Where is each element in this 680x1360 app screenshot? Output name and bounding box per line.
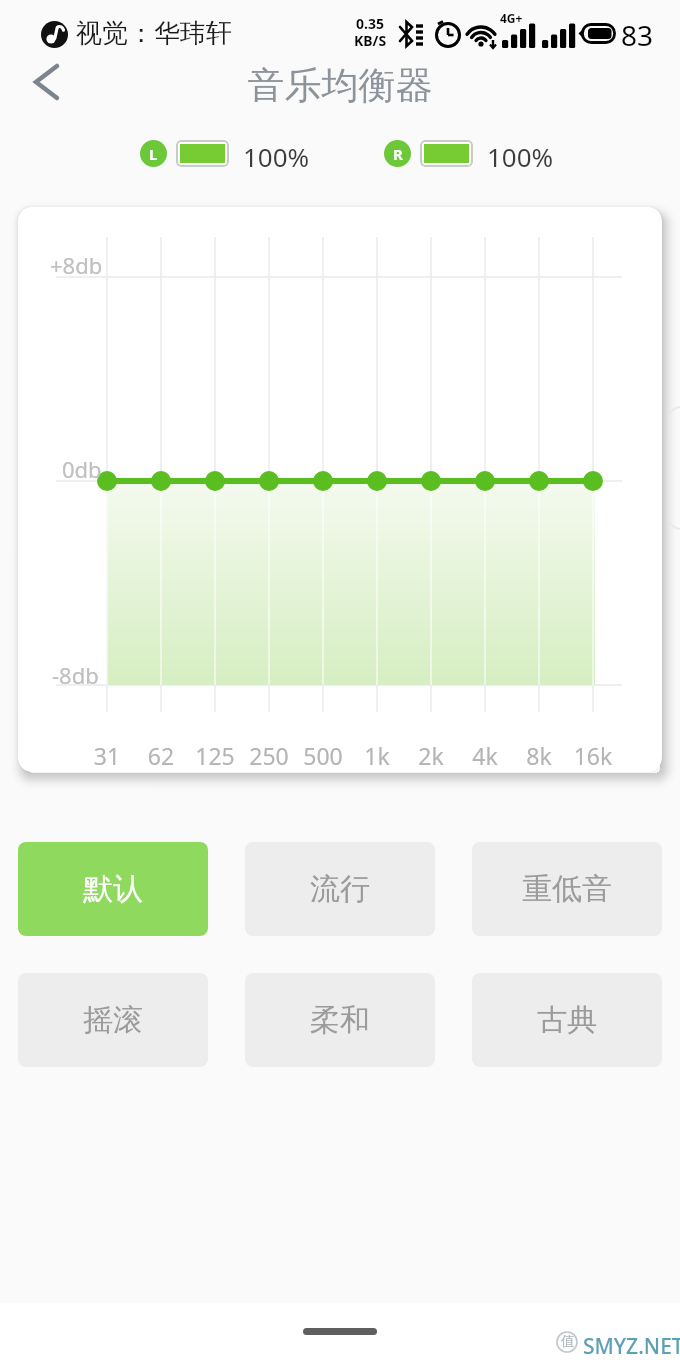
staticText: KB/S (354, 31, 387, 50)
staticText: 0db (62, 454, 102, 484)
staticText: R (393, 144, 403, 164)
staticText: 柔和 (310, 1001, 370, 1039)
staticText: 100% (487, 139, 554, 174)
button[interactable]: 重低音 (472, 842, 662, 936)
staticText: 音乐均衡器 (0, 62, 680, 109)
button[interactable]: 古典 (472, 973, 662, 1067)
staticText: 4k (458, 740, 512, 770)
staticText: L (149, 144, 158, 164)
staticText: 8k (512, 740, 566, 770)
button[interactable]: 默认 (18, 842, 208, 936)
staticText: 4G+ (500, 10, 523, 26)
staticText: 值 (561, 1333, 575, 1351)
staticText: 125 (188, 740, 242, 770)
staticText: 视觉：华玮轩 (76, 17, 232, 50)
staticText: 流行 (310, 870, 370, 908)
staticText: 1k (350, 740, 404, 770)
staticText: -8db (52, 660, 99, 690)
staticText: SMYZ.NET (583, 1332, 680, 1360)
button[interactable]: 柔和 (245, 973, 435, 1067)
staticText: 500 (296, 740, 350, 770)
staticText: +8db (50, 250, 103, 280)
staticText: 0.35 (356, 14, 384, 33)
staticText: 16k (566, 740, 620, 770)
staticText: 古典 (537, 1001, 597, 1039)
staticText: 62 (134, 740, 188, 770)
button[interactable]: 摇滚 (18, 973, 208, 1067)
staticText: 2k (404, 740, 458, 770)
button[interactable]: 流行 (245, 842, 435, 936)
button[interactable] (303, 1328, 377, 1335)
staticText: 250 (242, 740, 296, 770)
staticText: 100% (243, 139, 310, 174)
staticText: 83 (621, 16, 654, 54)
staticText: 摇滚 (83, 1001, 143, 1039)
button[interactable] (22, 58, 74, 110)
staticText: 默认 (83, 870, 143, 908)
staticText: 31 (80, 740, 134, 770)
staticText: 重低音 (522, 870, 612, 908)
